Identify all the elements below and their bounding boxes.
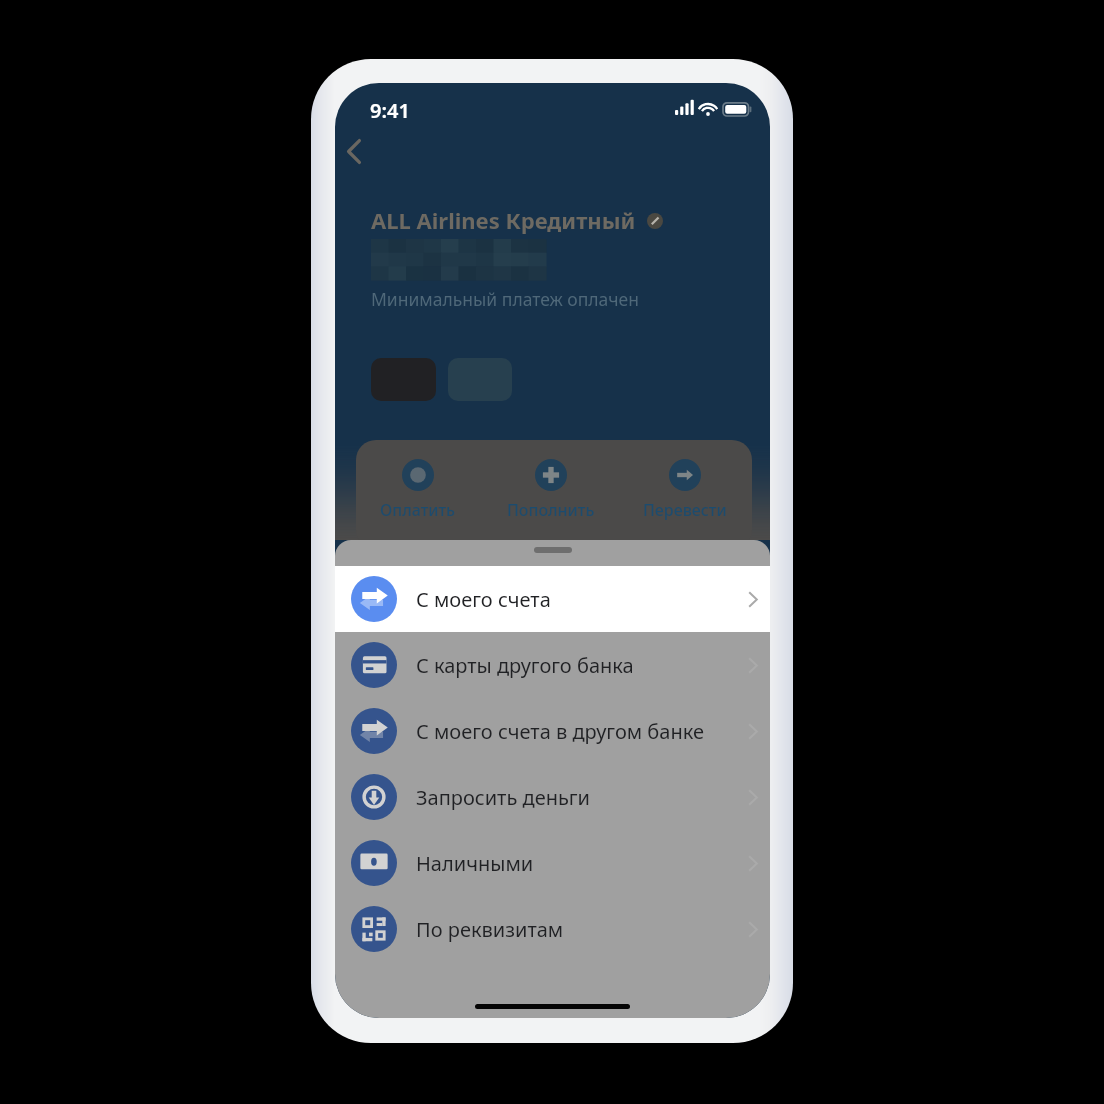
button[interactable]: Пополнить bbox=[495, 459, 607, 521]
staticText: С карты другого банка bbox=[416, 652, 634, 679]
staticText: 9:41 bbox=[370, 97, 410, 124]
staticText: С моего счета в другом банке bbox=[416, 718, 704, 745]
button[interactable]: Оплатить bbox=[362, 459, 474, 521]
staticText: С моего счета bbox=[416, 586, 551, 613]
staticText: Наличными bbox=[416, 850, 534, 877]
staticText: Перевести bbox=[643, 499, 727, 521]
button[interactable]: С моего счета bbox=[335, 566, 770, 632]
staticText: Запросить деньги bbox=[416, 784, 591, 811]
button[interactable]: С моего счета в другом банке bbox=[335, 698, 770, 764]
button[interactable]: С карты другого банка bbox=[335, 632, 770, 698]
staticText: Минимальный платеж оплачен bbox=[371, 287, 639, 311]
staticText: Оплатить bbox=[380, 499, 456, 521]
staticText: По реквизитам bbox=[416, 916, 564, 943]
staticText: Пополнить bbox=[507, 499, 595, 521]
staticText: ALL Airlines Кредитный bbox=[371, 205, 636, 235]
button[interactable]: Наличными bbox=[335, 830, 770, 896]
button[interactable]: Back bbox=[335, 129, 376, 173]
button[interactable]: По реквизитам bbox=[335, 896, 770, 962]
button[interactable]: Запросить деньги bbox=[335, 764, 770, 830]
button[interactable]: Перевести bbox=[629, 459, 741, 521]
